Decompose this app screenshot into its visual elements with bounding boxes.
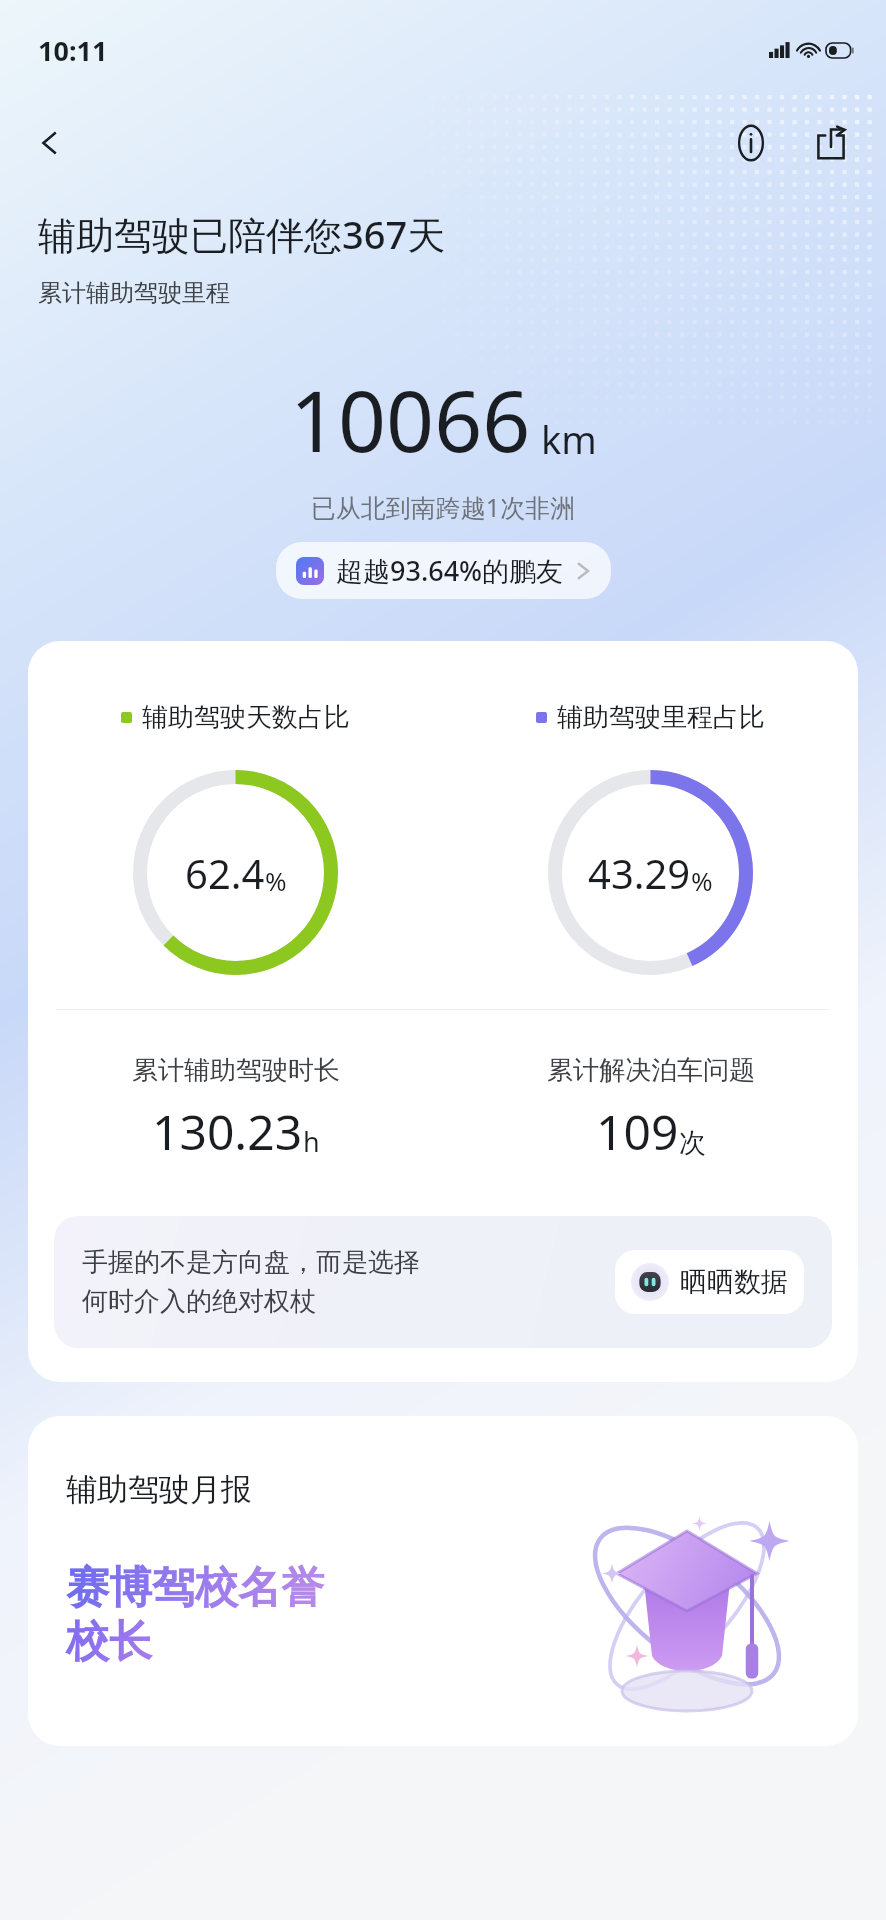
button[interactable]: Info [722, 114, 780, 172]
staticText: 辅助驾驶天数占比 [142, 701, 350, 734]
staticText: 已从北到南跨越1次非洲 [0, 490, 886, 524]
staticText: 10:11 [38, 32, 108, 69]
staticText: 130.23 [152, 1099, 303, 1164]
staticText: 累计辅助驾驶时长 [132, 1054, 340, 1087]
button[interactable]: 晒晒数据 [615, 1250, 804, 1314]
staticText: 累计解决泊车问题 [547, 1054, 755, 1087]
staticText: 次 [679, 1126, 706, 1160]
staticText: h [303, 1123, 320, 1160]
staticText: 超越93.64%的鹏友 [336, 552, 564, 589]
staticText: 辅助驾驶里程占比 [557, 701, 765, 734]
button[interactable]: Share [802, 114, 860, 172]
staticText: % [691, 863, 713, 898]
staticText: 校长 [66, 1615, 152, 1669]
staticText: 辅助驾驶已陪伴您367天 [38, 208, 446, 260]
staticText: 43.29 [588, 846, 691, 900]
staticText: % [265, 863, 287, 898]
staticText: 累计辅助驾驶里程 [38, 278, 230, 308]
staticText: 10066 [290, 362, 531, 476]
staticText: 何时介入的绝对权杖 [82, 1285, 316, 1318]
staticText: 手握的不是方向盘，而是选择 [82, 1246, 420, 1279]
staticText: 晒晒数据 [680, 1265, 788, 1299]
staticText: 赛博驾校名誉 [66, 1561, 324, 1615]
button[interactable]: 超越93.64%的鹏友 [276, 542, 611, 599]
staticText: 62.4 [185, 846, 265, 900]
button[interactable]: Back [22, 115, 78, 171]
staticText: 辅助驾驶月报 [66, 1470, 252, 1509]
staticText: km [541, 413, 597, 465]
staticText: 109 [596, 1099, 679, 1164]
